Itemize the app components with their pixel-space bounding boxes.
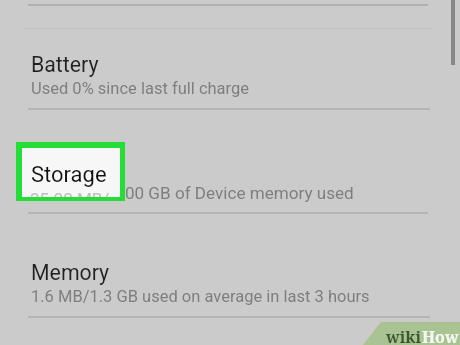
staticText: wiki <box>386 326 422 345</box>
staticText: Memory <box>31 260 110 285</box>
staticText: 1.6 MB/1.3 GB used on average in last 3 … <box>31 287 370 306</box>
button[interactable]: Storage <box>0 131 460 231</box>
staticText: 25.00 MB/1.00 GB of Device memory used <box>30 189 120 197</box>
staticText: Storage <box>31 162 107 188</box>
staticText: Storage <box>31 156 105 181</box>
button[interactable]: Battery <box>0 27 460 127</box>
staticText: 25.00 MB/1.00 GB of Device memory used <box>31 183 354 203</box>
button[interactable]: Memory <box>0 235 460 335</box>
staticText: How <box>422 326 459 345</box>
staticText: Used 0% since last full charge <box>31 79 250 98</box>
staticText: Battery <box>31 52 99 77</box>
